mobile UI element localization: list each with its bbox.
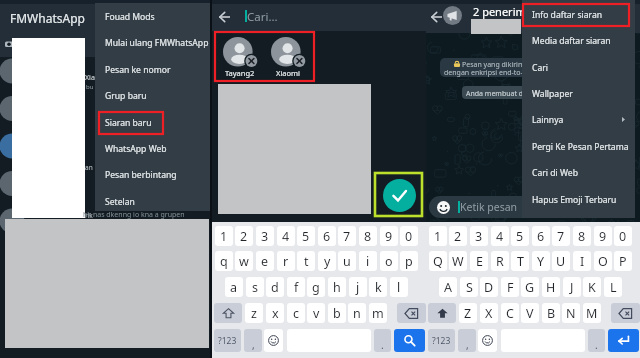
button[interactable]: M bbox=[583, 303, 601, 323]
button[interactable]: H bbox=[542, 277, 560, 297]
button[interactable]: b bbox=[328, 303, 346, 323]
button[interactable]: k bbox=[369, 277, 387, 297]
button[interactable]: n bbox=[348, 303, 366, 323]
button[interactable]: r bbox=[277, 251, 295, 271]
button[interactable]: q bbox=[215, 251, 233, 271]
button[interactable]: Hapus Emoji Terbaru bbox=[522, 187, 635, 213]
button[interactable]: 1 bbox=[429, 226, 447, 246]
button[interactable]: Media daftar siaran bbox=[522, 28, 635, 54]
button[interactable]: Q bbox=[429, 251, 447, 271]
button[interactable]: 4 bbox=[277, 226, 295, 246]
button[interactable]: Pesan berbintang bbox=[95, 162, 210, 188]
button[interactable]: z bbox=[245, 303, 263, 323]
button[interactable]: Wallpaper bbox=[522, 81, 635, 107]
button[interactable] bbox=[264, 329, 283, 352]
button[interactable]: Pesan ke nomor bbox=[95, 57, 210, 83]
button[interactable]: d bbox=[266, 277, 284, 297]
button[interactable]: K bbox=[583, 277, 601, 297]
button[interactable]: F bbox=[501, 277, 519, 297]
button[interactable]: w bbox=[235, 251, 253, 271]
button[interactable]: V bbox=[521, 303, 539, 323]
button[interactable]: c bbox=[287, 303, 305, 323]
button[interactable]: 8 bbox=[573, 226, 591, 246]
button[interactable]: 6 bbox=[318, 226, 336, 246]
button[interactable]: O bbox=[594, 251, 612, 271]
button[interactable]: 1 bbox=[215, 226, 233, 246]
button[interactable]: X bbox=[480, 303, 498, 323]
button[interactable]: x bbox=[266, 303, 284, 323]
button[interactable]: l bbox=[390, 277, 408, 297]
button[interactable]: 4 bbox=[491, 226, 509, 246]
button[interactable]: u bbox=[338, 251, 356, 271]
button[interactable]: Mulai ulang FMWhatsApp bbox=[95, 30, 210, 56]
button[interactable]: Pergi Ke Pesan Pertama bbox=[522, 134, 635, 160]
button[interactable]: 2 bbox=[235, 226, 253, 246]
button[interactable]: E bbox=[470, 251, 488, 271]
button[interactable]: g bbox=[307, 277, 325, 297]
button[interactable]: a bbox=[225, 277, 243, 297]
button[interactable] bbox=[611, 303, 640, 323]
button[interactable] bbox=[397, 303, 426, 323]
button[interactable]: Xiaomi bbox=[267, 36, 309, 82]
button[interactable]: Y bbox=[532, 251, 550, 271]
button[interactable] bbox=[428, 303, 456, 323]
button[interactable]: j bbox=[349, 277, 367, 297]
button[interactable]: Broadcast list avatar bbox=[443, 6, 462, 25]
button[interactable]: Siaran baru bbox=[95, 110, 210, 136]
button[interactable]: L bbox=[604, 277, 622, 297]
button[interactable]: I bbox=[573, 251, 591, 271]
button[interactable]: Cari di Web bbox=[522, 160, 635, 186]
button[interactable]: 7 bbox=[338, 226, 356, 246]
button[interactable]: N bbox=[562, 303, 580, 323]
button[interactable]: Z bbox=[459, 303, 477, 323]
button[interactable]: h bbox=[328, 277, 346, 297]
button[interactable]: Back bbox=[428, 9, 444, 25]
button[interactable]: m bbox=[369, 303, 387, 323]
button[interactable]: C bbox=[501, 303, 519, 323]
button[interactable]: 0 bbox=[400, 226, 418, 246]
button[interactable]: Lainnya bbox=[522, 107, 635, 133]
button[interactable]: Setelan bbox=[95, 189, 210, 215]
button[interactable] bbox=[478, 329, 497, 352]
button[interactable]: P bbox=[614, 251, 632, 271]
button[interactable]: 6 bbox=[532, 226, 550, 246]
button[interactable]: . bbox=[588, 329, 605, 352]
button[interactable]: Grup baru bbox=[95, 83, 210, 109]
button[interactable]: J bbox=[563, 277, 581, 297]
button[interactable]: T bbox=[511, 251, 529, 271]
button[interactable]: , bbox=[458, 329, 476, 352]
button[interactable]: B bbox=[542, 303, 560, 323]
button[interactable]: A bbox=[439, 277, 457, 297]
button[interactable]: t bbox=[297, 251, 315, 271]
button[interactable]: Back bbox=[216, 9, 232, 25]
button[interactable]: ?123 bbox=[428, 329, 455, 352]
button[interactable]: o bbox=[380, 251, 398, 271]
button[interactable]: Tayang2 bbox=[219, 36, 261, 82]
button[interactable]: G bbox=[521, 277, 539, 297]
button[interactable]: 5 bbox=[511, 226, 529, 246]
button[interactable] bbox=[214, 303, 242, 323]
button[interactable]: 8 bbox=[359, 226, 377, 246]
button[interactable]: f bbox=[287, 277, 305, 297]
button[interactable]: Confirm recipients bbox=[383, 179, 416, 212]
button[interactable]: W bbox=[449, 251, 467, 271]
button[interactable]: Ketik pesan bbox=[429, 196, 539, 218]
button[interactable]: ?123 bbox=[214, 329, 241, 352]
button[interactable]: s bbox=[246, 277, 264, 297]
button[interactable]: 3 bbox=[256, 226, 274, 246]
button[interactable]: D bbox=[480, 277, 498, 297]
button[interactable]: R bbox=[491, 251, 509, 271]
button[interactable]: Fouad Mods bbox=[95, 4, 210, 30]
button[interactable] bbox=[608, 329, 639, 352]
button[interactable]: U bbox=[552, 251, 570, 271]
button[interactable]: 3 bbox=[470, 226, 488, 246]
button[interactable]: S bbox=[460, 277, 478, 297]
button[interactable]: y bbox=[318, 251, 336, 271]
button[interactable]: v bbox=[307, 303, 325, 323]
button[interactable]: WhatsApp Web bbox=[95, 136, 210, 162]
button[interactable] bbox=[394, 329, 425, 352]
button[interactable]: 9 bbox=[380, 226, 398, 246]
button[interactable]: e bbox=[256, 251, 274, 271]
